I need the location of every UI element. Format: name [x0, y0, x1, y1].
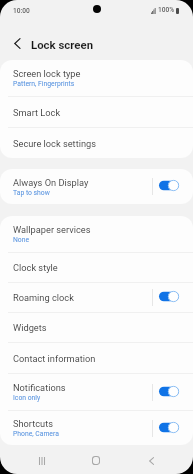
- staticText: Clock style: [13, 262, 58, 273]
- button[interactable]: Contact information: [0, 343, 193, 373]
- button[interactable]: Toggle: [159, 422, 179, 433]
- button[interactable]: Clock style: [0, 253, 193, 282]
- button[interactable]: Navigate up: [5, 31, 29, 55]
- staticText: Shortcuts: [13, 418, 53, 429]
- staticText: Lock screen: [31, 38, 94, 51]
- button[interactable]: Toggle: [159, 291, 179, 302]
- button[interactable]: Shortcuts: [0, 411, 193, 445]
- staticText: Secure lock settings: [13, 138, 96, 149]
- button[interactable]: Widgets: [0, 313, 193, 342]
- staticText: Tap to show: [13, 189, 50, 197]
- staticText: None: [13, 236, 30, 244]
- button[interactable]: Toggle: [159, 386, 179, 397]
- button[interactable]: Screen lock type: [0, 60, 193, 96]
- staticText: Widgets: [13, 322, 47, 333]
- button[interactable]: Toggle: [159, 180, 179, 191]
- staticText: Wallpaper services: [13, 224, 91, 235]
- button[interactable]: Always On Display: [0, 169, 193, 204]
- button[interactable]: Home: [84, 446, 108, 474]
- staticText: 100%: [158, 6, 175, 14]
- button[interactable]: Wallpaper services: [0, 216, 193, 252]
- button[interactable]: Roaming clock: [0, 283, 193, 312]
- staticText: Roaming clock: [13, 292, 74, 303]
- staticText: Smart Lock: [13, 107, 61, 118]
- staticText: Screen lock type: [13, 68, 81, 79]
- staticText: Always On Display: [13, 177, 89, 188]
- button[interactable]: Notifications: [0, 374, 193, 410]
- button[interactable]: Back: [139, 446, 163, 474]
- button[interactable]: Recent apps: [30, 446, 54, 474]
- staticText: Phone, Camera: [13, 430, 59, 438]
- staticText: Notifications: [13, 382, 66, 393]
- button[interactable]: Smart Lock: [0, 97, 193, 127]
- staticText: Pattern, Fingerprints: [13, 80, 75, 88]
- staticText: 10:00: [13, 7, 30, 15]
- staticText: Icon only: [13, 394, 41, 402]
- staticText: Contact information: [13, 353, 96, 364]
- button[interactable]: Secure lock settings: [0, 128, 193, 158]
